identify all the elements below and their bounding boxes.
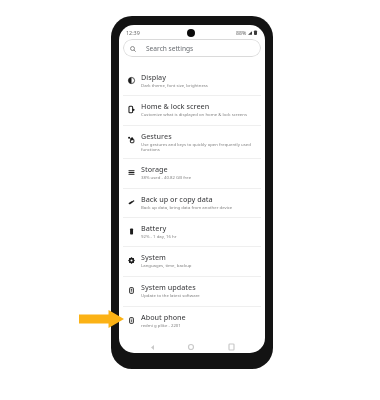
staticText: Storage (141, 164, 168, 174)
staticText: Dark theme, font size, brightness (141, 82, 208, 88)
button[interactable]: System updates (119, 277, 265, 307)
staticText: About phone (141, 312, 186, 322)
button[interactable]: Display (119, 67, 265, 96)
staticText: Home & lock screen (141, 101, 210, 111)
button[interactable]: Home (185, 341, 197, 353)
staticText: Back up or copy data (141, 194, 213, 204)
button[interactable]: Recent apps (225, 341, 237, 353)
staticText: Customize what is displayed on home & lo… (141, 111, 248, 117)
staticText: Gestures (141, 131, 172, 141)
button[interactable]: Back up or copy data (119, 189, 265, 218)
staticText: Battery (141, 223, 167, 233)
staticText: 12:39 (126, 29, 140, 36)
staticText: 38% used - 40.82 GB free (141, 174, 192, 180)
staticText: redmi g plike - 2201 (141, 322, 181, 328)
button[interactable]: Storage (119, 159, 265, 189)
button[interactable]: Battery (119, 218, 265, 247)
staticText: Back up data, bring data from another de… (141, 204, 233, 210)
staticText: Display (141, 72, 166, 82)
button[interactable]: System (119, 247, 265, 277)
button[interactable]: Gestures (119, 126, 265, 159)
staticText: Languages, time, backup (141, 262, 192, 268)
other: Pointer arrow (79, 310, 124, 328)
button[interactable]: Search settings (123, 39, 261, 57)
staticText: Update to the latest software (141, 292, 200, 298)
button[interactable]: Back (146, 341, 158, 353)
staticText: System (141, 252, 166, 262)
staticText: 92% - 1 day, 16 hr (141, 233, 177, 239)
staticText: Search settings (146, 44, 194, 53)
staticText: 88% (236, 29, 247, 36)
staticText: Use gestures and keys to quickly open fr… (141, 141, 259, 152)
button[interactable]: Home & lock screen (119, 96, 265, 126)
button[interactable]: About phone (119, 307, 265, 336)
staticText: System updates (141, 282, 196, 292)
